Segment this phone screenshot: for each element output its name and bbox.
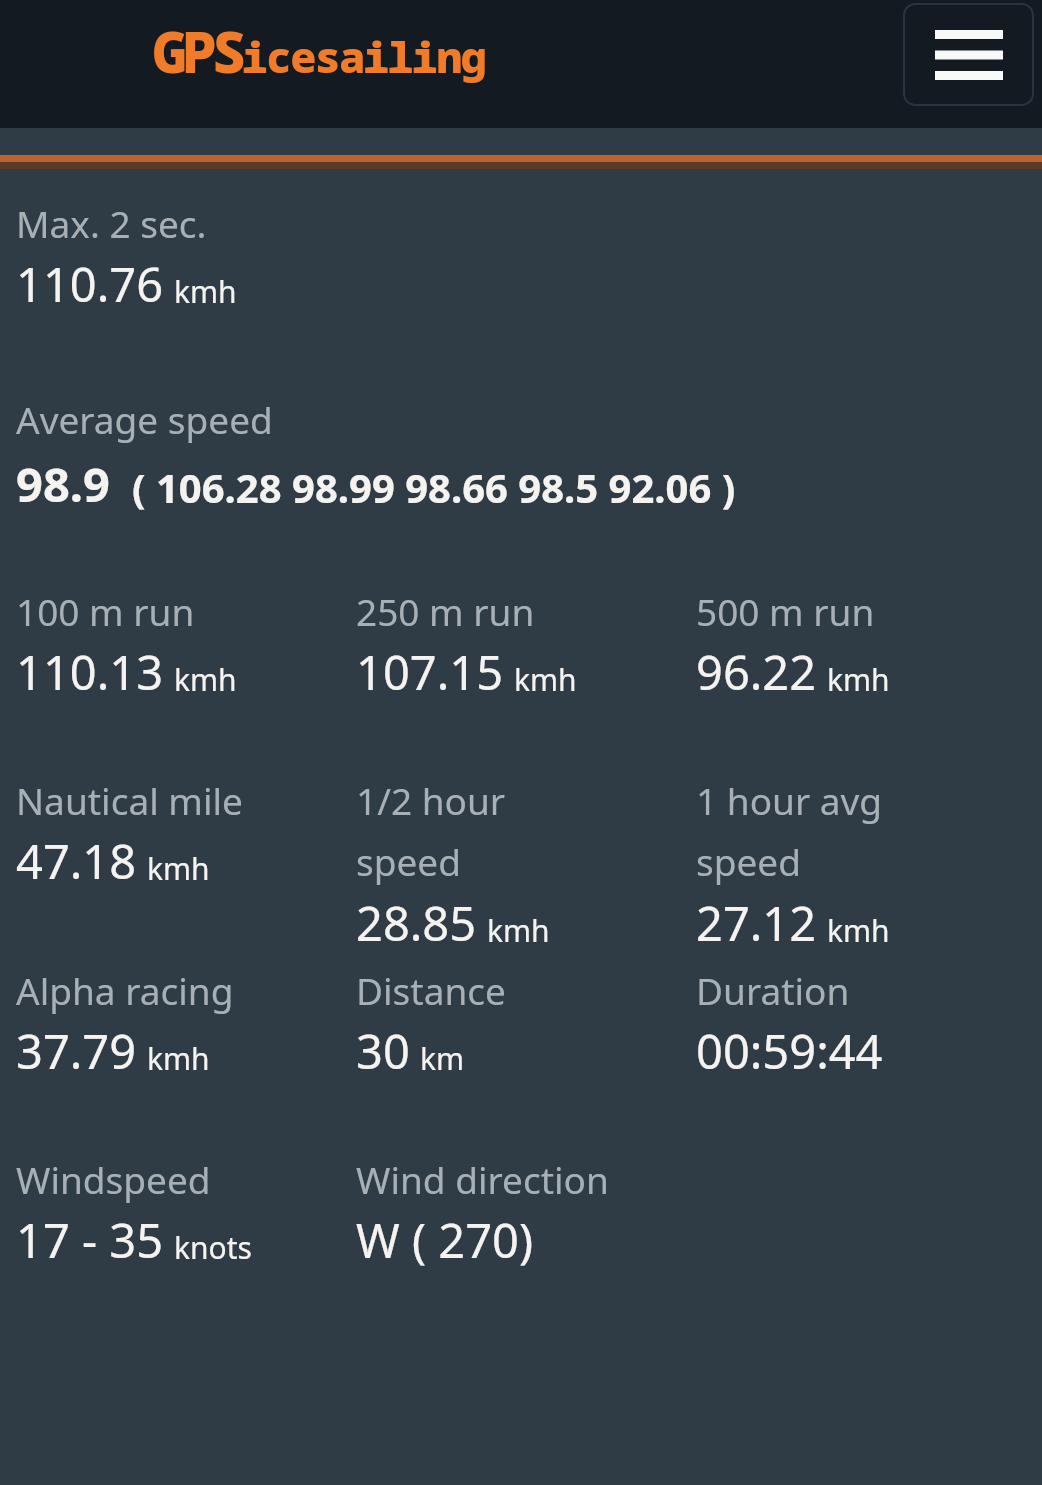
staticText: 110.76 — [16, 252, 164, 316]
staticText: kmh — [827, 659, 890, 700]
button[interactable]: GPSicesailing home — [153, 13, 485, 89]
staticText: 27.12 — [696, 891, 817, 955]
staticText: 30 — [356, 1019, 410, 1083]
staticText: 47.18 — [16, 829, 137, 893]
button[interactable]: Duration — [696, 965, 1036, 1083]
staticText: 1/2 hour speed — [356, 775, 506, 887]
button[interactable]: 250 m run — [356, 586, 696, 704]
staticText: GPS — [153, 13, 242, 89]
staticText: kmh — [514, 659, 577, 700]
staticText: kmh — [147, 848, 210, 889]
button[interactable]: 1/2 hour speed — [356, 775, 696, 955]
button[interactable]: Windspeed — [16, 1154, 356, 1272]
staticText: 1 hour avg speed — [696, 775, 883, 887]
staticText: ( 106.28 98.99 98.66 98.5 92.06 ) — [132, 460, 736, 514]
staticText: 500 m run — [696, 586, 875, 636]
button[interactable]: Open navigation menu — [903, 3, 1034, 106]
staticText: icesailing — [242, 27, 485, 86]
button[interactable]: 100 m run — [16, 586, 356, 704]
staticText: 98.9 — [16, 452, 110, 516]
staticText: 96.22 — [696, 640, 817, 704]
staticText: kmh — [147, 1038, 210, 1079]
staticText: Alpha racing — [16, 965, 234, 1015]
staticText: 37.79 — [16, 1019, 137, 1083]
staticText: 100 m run — [16, 586, 195, 636]
staticText: 28.85 — [356, 891, 477, 955]
staticText: 110.13 — [16, 640, 164, 704]
staticText: Average speed — [16, 394, 273, 444]
staticText: kmh — [174, 659, 237, 700]
button[interactable]: Max. 2 sec. — [16, 198, 237, 316]
staticText: 17 - 35 — [16, 1208, 164, 1272]
staticText: Nautical mile — [16, 775, 243, 825]
staticText: Duration — [696, 965, 850, 1015]
staticText: Wind direction — [356, 1154, 609, 1204]
staticText: kmh — [827, 910, 890, 951]
staticText: kmh — [487, 910, 550, 951]
button[interactable]: 500 m run — [696, 586, 1036, 704]
staticText: Distance — [356, 965, 506, 1015]
staticText: kmh — [174, 271, 237, 312]
button[interactable]: Alpha racing — [16, 965, 356, 1083]
button[interactable]: Wind direction — [356, 1154, 696, 1272]
staticText: knots — [174, 1227, 252, 1268]
button[interactable]: Average speed — [16, 394, 736, 516]
staticText: 107.15 — [356, 640, 504, 704]
staticText: W ( 270) — [356, 1208, 534, 1272]
button[interactable]: Distance — [356, 965, 696, 1083]
staticText: Max. 2 sec. — [16, 198, 207, 248]
button[interactable]: 1 hour avg speed — [696, 775, 1036, 955]
staticText: km — [420, 1038, 465, 1079]
staticText: Windspeed — [16, 1154, 211, 1204]
staticText: 00:59:44 — [696, 1019, 883, 1083]
staticText: 250 m run — [356, 586, 535, 636]
button[interactable]: Nautical mile — [16, 775, 356, 893]
